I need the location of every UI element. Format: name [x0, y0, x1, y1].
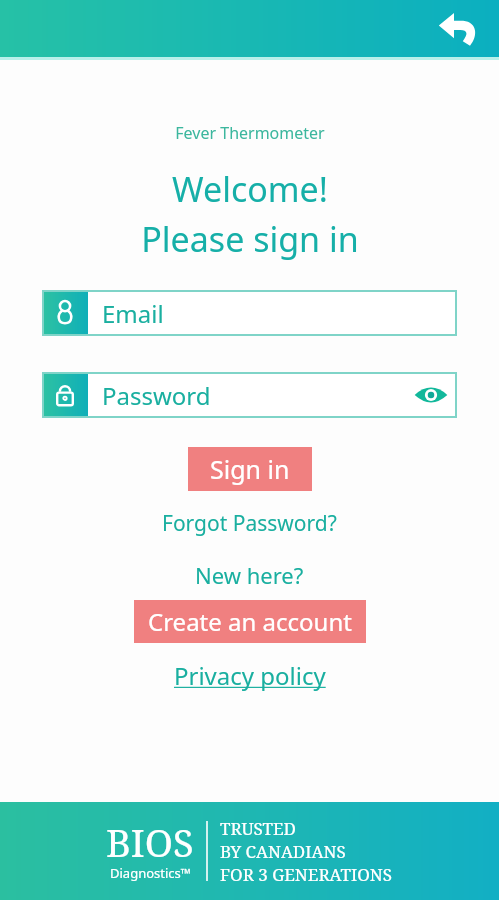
staticText: Welcome!: [172, 166, 328, 212]
button[interactable]: Forgot Password?: [158, 505, 341, 542]
staticText: BIOS: [106, 816, 194, 868]
staticText: Please sign in: [141, 216, 359, 262]
staticText: Email: [102, 297, 457, 330]
staticText: Diagnostics™: [110, 864, 191, 882]
staticText: Sign in: [210, 452, 290, 486]
staticText: Fever Thermometer: [175, 122, 325, 144]
button[interactable]: Create an account: [134, 600, 366, 643]
staticText: Forgot Password?: [162, 509, 337, 538]
staticText: Password: [102, 379, 405, 412]
staticText: TRUSTED: [220, 817, 296, 840]
button[interactable]: Sign in: [188, 447, 312, 491]
button[interactable]: Show password: [405, 372, 457, 418]
staticText: Create an account: [148, 605, 352, 638]
button[interactable]: User: [42, 290, 457, 336]
button[interactable]: Lock: [42, 372, 457, 418]
button[interactable]: Privacy policy: [170, 655, 330, 696]
staticText: New here?: [195, 560, 304, 590]
staticText: Privacy policy: [174, 659, 326, 692]
staticText: FOR 3 GENERATIONS: [220, 863, 393, 886]
staticText: BY CANADIANS: [220, 840, 346, 863]
other: Lock: [42, 372, 88, 418]
other: User: [42, 290, 88, 336]
button[interactable]: Back: [435, 6, 481, 52]
